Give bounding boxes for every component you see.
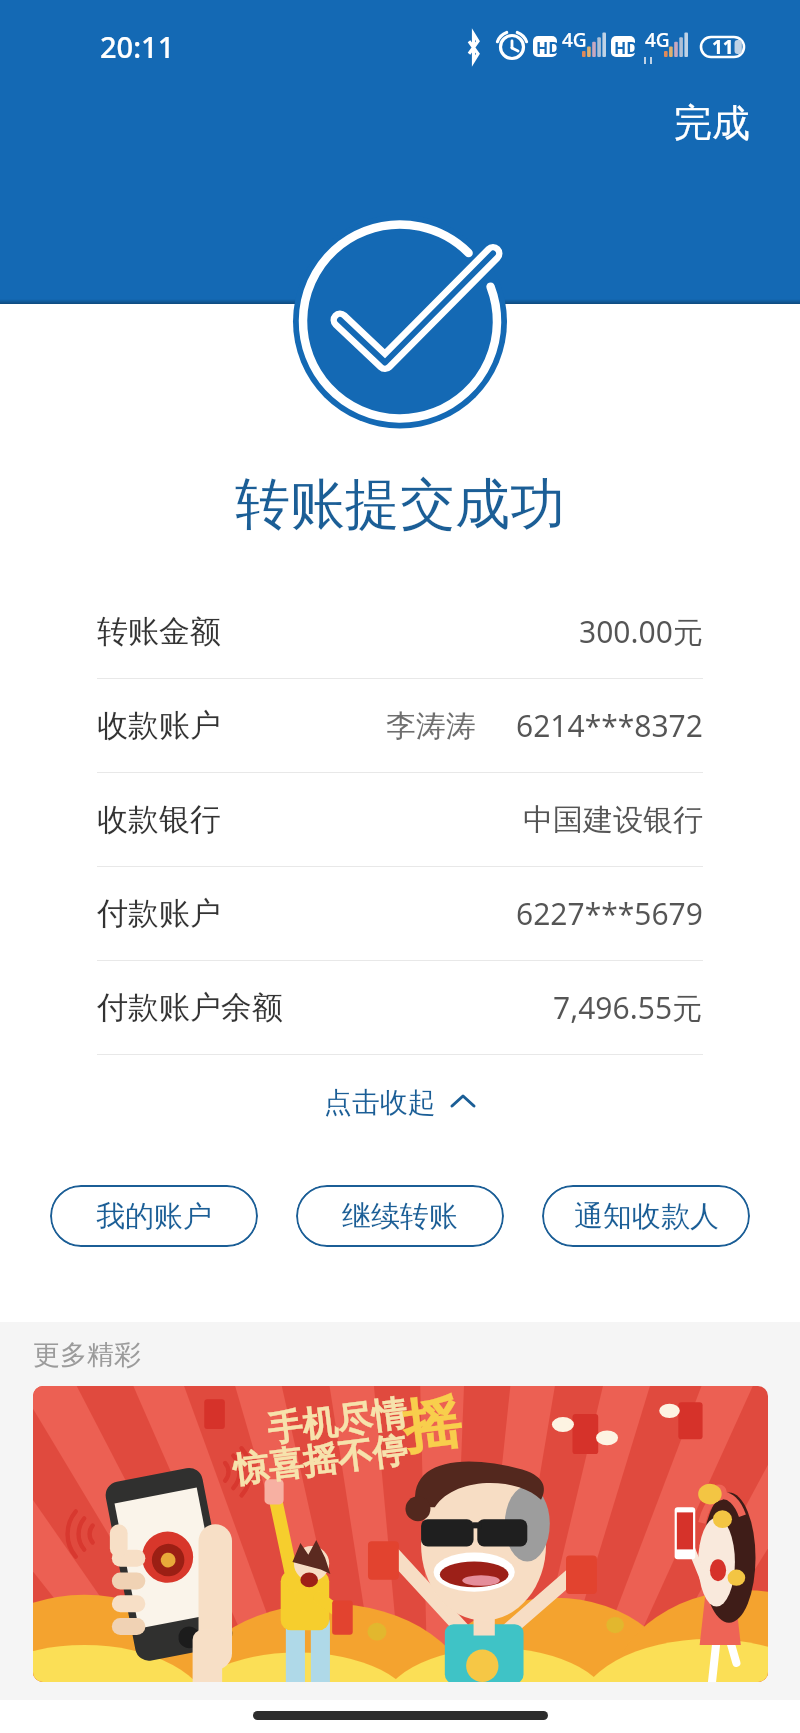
staticText: 收款账户 xyxy=(97,706,221,745)
staticText: 11 xyxy=(712,34,734,60)
staticText: HD xyxy=(536,37,560,59)
button[interactable]: 活动横幅：手机尽情摇 xyxy=(33,1386,768,1682)
staticText: 收款银行 xyxy=(97,800,221,839)
staticText: 惊喜摇不停 xyxy=(231,1427,410,1492)
staticText: 4G xyxy=(645,27,670,53)
staticText: 付款账户余额 xyxy=(97,988,283,1027)
staticText: HD xyxy=(614,37,638,59)
staticText: 7,496.55元 xyxy=(553,987,703,1028)
staticText: 6214***8372 xyxy=(516,705,703,746)
staticText: 继续转账 xyxy=(342,1198,458,1235)
button[interactable]: 完成 xyxy=(660,91,764,155)
staticText: 20:11 xyxy=(100,27,175,66)
button[interactable]: 继续转账 xyxy=(296,1185,504,1247)
staticText: 中国建设银行 xyxy=(523,801,703,839)
staticText: 手机尽情 xyxy=(265,1391,409,1451)
staticText: 更多精彩 xyxy=(33,1338,141,1372)
button[interactable]: 通知收款人 xyxy=(542,1185,750,1247)
staticText: 4G xyxy=(562,27,587,53)
staticText: 点击收起 xyxy=(324,1085,436,1120)
button[interactable]: 我的账户 xyxy=(50,1185,258,1247)
staticText: 完成 xyxy=(674,99,750,147)
staticText: 转账提交成功 xyxy=(0,470,800,539)
staticText: 6227***5679 xyxy=(516,893,703,934)
staticText: 转账金额 xyxy=(97,612,221,651)
staticText: 李涛涛 xyxy=(386,707,476,745)
staticText: 300.00元 xyxy=(579,611,703,652)
staticText: 通知收款人 xyxy=(574,1198,719,1235)
button[interactable]: 点击收起 xyxy=(0,1055,800,1149)
staticText: 付款账户 xyxy=(97,894,221,933)
staticText: 摇 xyxy=(399,1386,465,1464)
staticText: 我的账户 xyxy=(96,1198,212,1235)
